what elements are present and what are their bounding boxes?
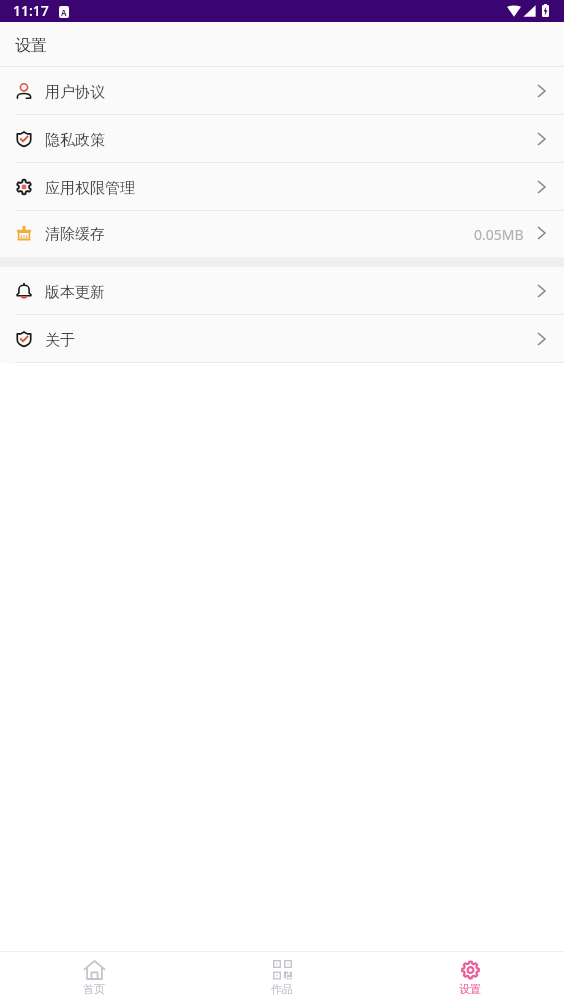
staticText: 清除缓存	[45, 225, 105, 244]
button[interactable]: 设置	[376, 952, 564, 1004]
staticText: 首页	[83, 982, 105, 996]
button[interactable]: 用户协议	[0, 67, 564, 115]
staticText: 用户协议	[45, 83, 105, 102]
staticText: 应用权限管理	[45, 179, 135, 198]
staticText: 0.05MB	[474, 225, 524, 244]
button[interactable]: 隐私政策	[0, 115, 564, 163]
button[interactable]: 清除缓存	[0, 211, 564, 257]
staticText: 设置	[459, 982, 481, 996]
button[interactable]: 关于	[0, 315, 564, 363]
staticText: A	[61, 7, 67, 18]
staticText: 关于	[45, 331, 75, 350]
button[interactable]: 应用权限管理	[0, 163, 564, 211]
button[interactable]: 首页	[0, 952, 188, 1004]
staticText: 隐私政策	[45, 131, 105, 150]
staticText: 作品	[271, 982, 293, 996]
button[interactable]: 作品	[188, 952, 376, 1004]
staticText: 11:17	[13, 1, 49, 20]
button[interactable]: 版本更新	[0, 267, 564, 315]
staticText: 版本更新	[45, 283, 105, 302]
staticText: 设置	[15, 36, 47, 56]
